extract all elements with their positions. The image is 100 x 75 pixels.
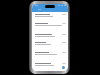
- button[interactable]: [32, 23, 68, 31]
- button[interactable]: [32, 52, 68, 60]
- button[interactable]: [32, 14, 68, 22]
- button[interactable]: [32, 63, 68, 71]
- button[interactable]: Add: [62, 66, 65, 69]
- button[interactable]: [32, 42, 68, 50]
- button[interactable]: [32, 34, 68, 42]
